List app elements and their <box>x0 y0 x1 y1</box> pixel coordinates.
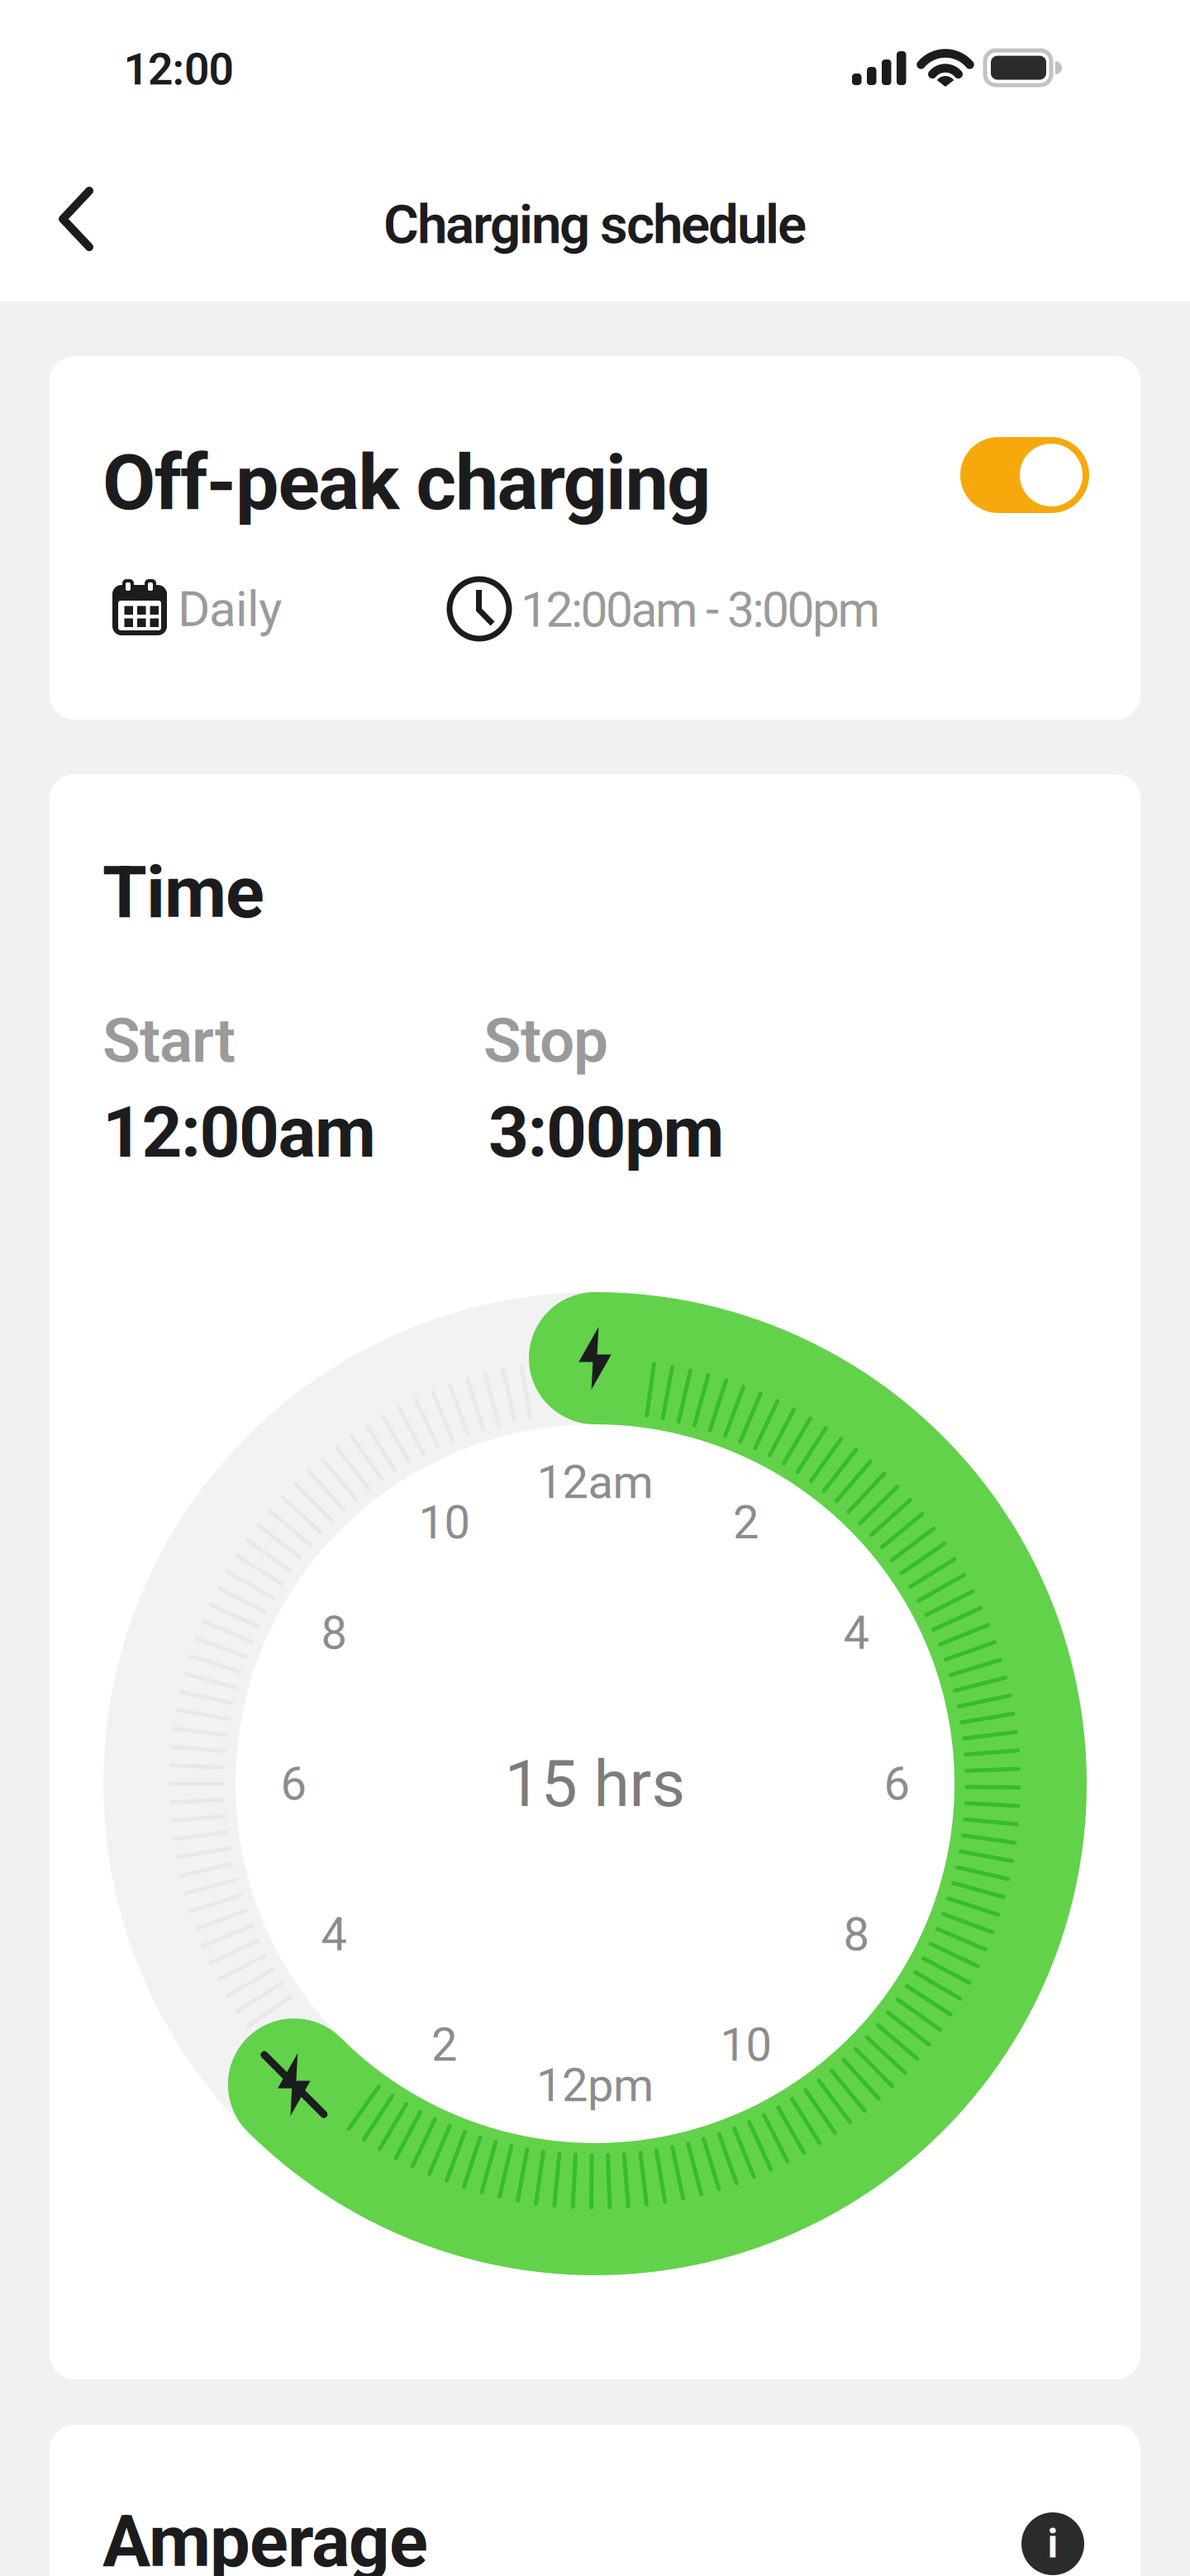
staticText: 3:00pm <box>488 1092 724 1173</box>
staticText: 4 <box>321 1908 347 1961</box>
staticText: Start <box>102 1005 236 1076</box>
button[interactable]: Off-peak charging <box>960 437 1089 513</box>
button[interactable]: 12:00am <box>102 1092 376 1173</box>
staticText: 2 <box>733 1496 759 1549</box>
staticText: 4 <box>843 1606 869 1659</box>
staticText: 6 <box>281 1757 306 1810</box>
staticText: 12pm <box>536 2059 654 2112</box>
staticText: 8 <box>843 1908 869 1961</box>
staticText: 12:00am <box>102 1092 376 1173</box>
staticText: 10 <box>419 1496 470 1549</box>
staticText: Time <box>102 852 264 934</box>
staticText: Charging schedule <box>383 194 807 256</box>
staticText: Daily <box>178 581 282 637</box>
staticText: Amperage <box>102 2501 428 2576</box>
staticText: Off-peak charging <box>102 439 711 527</box>
staticText: i <box>1047 2521 1058 2566</box>
staticText: 6 <box>884 1757 909 1810</box>
staticText: 12:00am - 3:00pm <box>521 582 880 638</box>
button[interactable]: Back <box>58 184 111 254</box>
staticText: 2 <box>431 2018 457 2071</box>
button[interactable]: Amperage info <box>1021 2512 1084 2575</box>
staticText: 12:00 <box>124 44 233 95</box>
button[interactable]: 3:00pm <box>488 1092 724 1173</box>
staticText: 15 hrs <box>505 1747 685 1821</box>
staticText: Stop <box>483 1005 608 1076</box>
staticText: 8 <box>321 1606 347 1659</box>
staticText: 10 <box>720 2018 771 2071</box>
staticText: 12am <box>537 1456 653 1509</box>
